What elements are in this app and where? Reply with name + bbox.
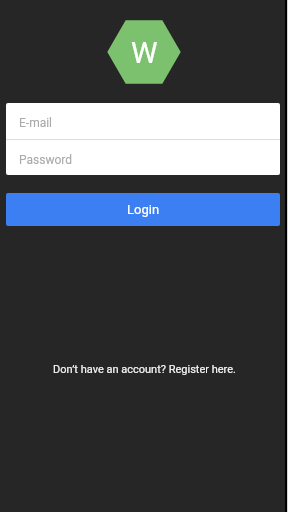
button[interactable]: Don’t have an account? Register here.	[53, 363, 236, 376]
button[interactable]: Login	[6, 193, 280, 226]
staticText: E-mail	[19, 116, 53, 130]
staticText: Login	[127, 202, 160, 217]
button[interactable]: E-mail	[6, 103, 280, 139]
staticText: W	[131, 35, 158, 70]
button[interactable]: Password	[6, 140, 280, 175]
staticText: Password	[19, 153, 73, 167]
